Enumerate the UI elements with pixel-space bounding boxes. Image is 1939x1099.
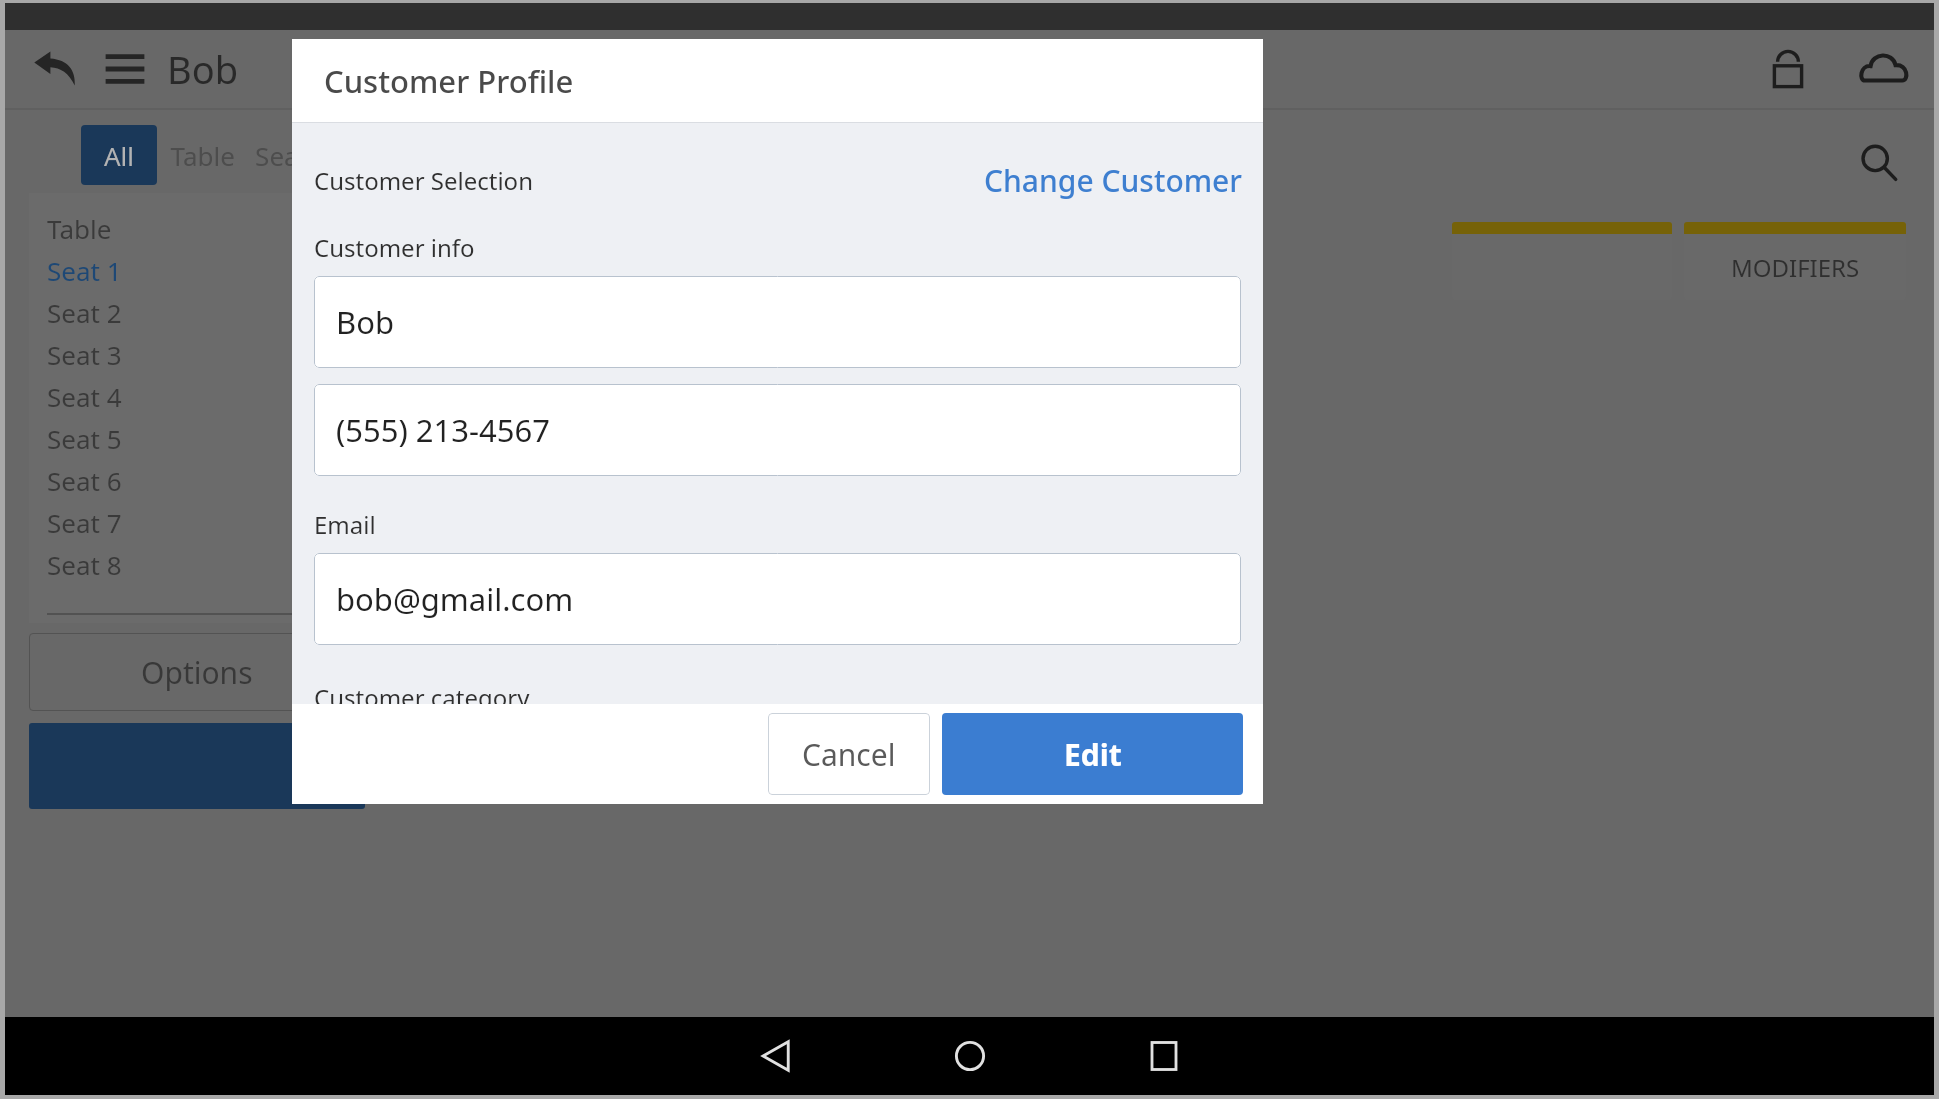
button[interactable]: All [81, 125, 157, 185]
button[interactable]: bob@gmail.com [314, 553, 1241, 645]
staticText: Table Seat 1 [157, 138, 330, 173]
button[interactable]: Edit [942, 713, 1243, 795]
staticText: Seat 4 [47, 379, 122, 414]
staticText: Seat 1 [47, 253, 122, 288]
staticText: Seat 6 [47, 463, 122, 498]
staticText: Change Customer [984, 160, 1243, 201]
button[interactable]: Search [1852, 136, 1906, 190]
button[interactable]: Back [27, 41, 83, 97]
staticText: Customer Selection [314, 164, 533, 197]
button[interactable]: MODIFIERS [1684, 222, 1906, 300]
staticText: Bob [167, 43, 239, 95]
button[interactable]: Recents [1124, 1017, 1204, 1095]
staticText: All [104, 138, 135, 173]
staticText: Options [141, 652, 253, 693]
button[interactable]: Cancel [768, 713, 930, 795]
staticText: Seat 2 [47, 295, 122, 330]
button[interactable]: Change Customer [984, 160, 1243, 201]
staticText: Customer category [314, 681, 530, 704]
button[interactable]: (555) 213-4567 [314, 384, 1241, 476]
button[interactable]: Options [29, 633, 365, 711]
staticText: Seat 7 [47, 505, 122, 540]
staticText: Seat 3 [47, 337, 122, 372]
button[interactable]: Pay [29, 723, 365, 809]
button[interactable]: Home [930, 1017, 1010, 1095]
staticText: Customer Profile [324, 60, 574, 102]
staticText: MODIFIERS [1731, 251, 1860, 284]
staticText: Table [47, 211, 112, 246]
button[interactable]: Lock [1760, 41, 1816, 97]
button[interactable]: Category [1452, 222, 1672, 300]
button[interactable]: Bob [314, 276, 1241, 368]
staticText: Email [314, 508, 376, 541]
staticText: Bob [336, 301, 394, 343]
staticText: (555) 213-4567 [336, 409, 550, 451]
staticText: Seat 5 [47, 421, 122, 456]
staticText: Customer info [314, 231, 475, 264]
button[interactable]: Menu [99, 43, 151, 95]
staticText: bob@gmail.com [336, 578, 574, 620]
button[interactable]: Back [736, 1017, 816, 1095]
staticText: Edit [1064, 734, 1122, 775]
button[interactable]: Cloud sync [1856, 41, 1912, 97]
staticText: Seat 8 [47, 547, 122, 582]
button[interactable]: Table Seat 1 [157, 125, 330, 185]
staticText: Cancel [802, 734, 896, 775]
